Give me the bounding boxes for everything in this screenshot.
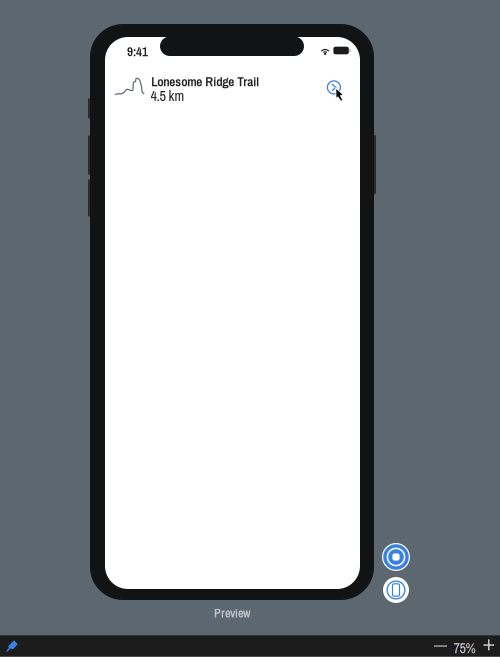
- button[interactable]: Preview device settings: [383, 577, 409, 603]
- staticText: 75%: [453, 639, 475, 657]
- staticText: 4.5 km: [151, 86, 185, 105]
- staticText: Preview: [214, 605, 250, 621]
- staticText: 9:41: [127, 43, 148, 60]
- button[interactable]: Live preview: [382, 543, 410, 571]
- button[interactable]: Pin preview: [6, 640, 18, 652]
- staticText: Lonesome Ridge Trail: [151, 73, 259, 90]
- button[interactable]: Zoom out: [434, 640, 447, 652]
- button[interactable]: Zoom in: [483, 639, 494, 651]
- button[interactable]: Show trail details: [327, 80, 341, 95]
